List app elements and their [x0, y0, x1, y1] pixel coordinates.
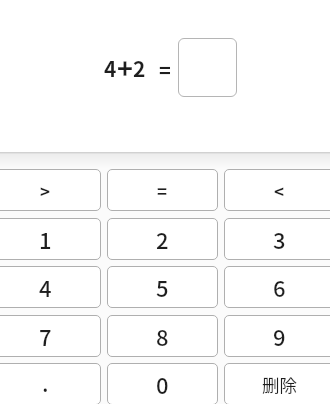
button[interactable]: 0 — [107, 363, 218, 404]
staticText: 删除 — [262, 372, 297, 397]
staticText: < — [274, 178, 285, 203]
staticText: 6 — [273, 271, 286, 303]
button[interactable]: < — [224, 169, 330, 211]
staticText: 2 — [156, 223, 169, 255]
button[interactable]: 4 — [0, 266, 101, 308]
button[interactable]: 6 — [224, 266, 330, 308]
staticText: 4 — [39, 271, 52, 303]
button[interactable]: 3 — [224, 218, 330, 260]
staticText: 2 — [133, 53, 146, 83]
button[interactable]: . — [0, 363, 101, 404]
staticText: 9 — [273, 320, 286, 352]
button[interactable]: 8 — [107, 315, 218, 357]
button[interactable]: 7 — [0, 315, 101, 357]
staticText: 5 — [156, 271, 169, 303]
staticText: = — [159, 55, 171, 84]
staticText: . — [42, 366, 49, 398]
button[interactable]: > — [0, 169, 101, 211]
button[interactable]: 9 — [224, 315, 330, 357]
staticText: 8 — [156, 320, 169, 352]
button[interactable]: 删除 — [224, 363, 330, 404]
staticText: 3 — [273, 223, 286, 255]
staticText: + — [117, 48, 133, 87]
button[interactable]: = — [107, 169, 218, 211]
staticText: 0 — [156, 368, 169, 400]
button[interactable]: 5 — [107, 266, 218, 308]
staticText: > — [40, 178, 51, 203]
staticText: 1 — [39, 223, 52, 255]
button[interactable]: 1 — [0, 218, 101, 260]
staticText: 7 — [39, 320, 52, 352]
staticText: 4 — [104, 53, 117, 83]
staticText: = — [157, 178, 168, 203]
button[interactable]: 2 — [107, 218, 218, 260]
